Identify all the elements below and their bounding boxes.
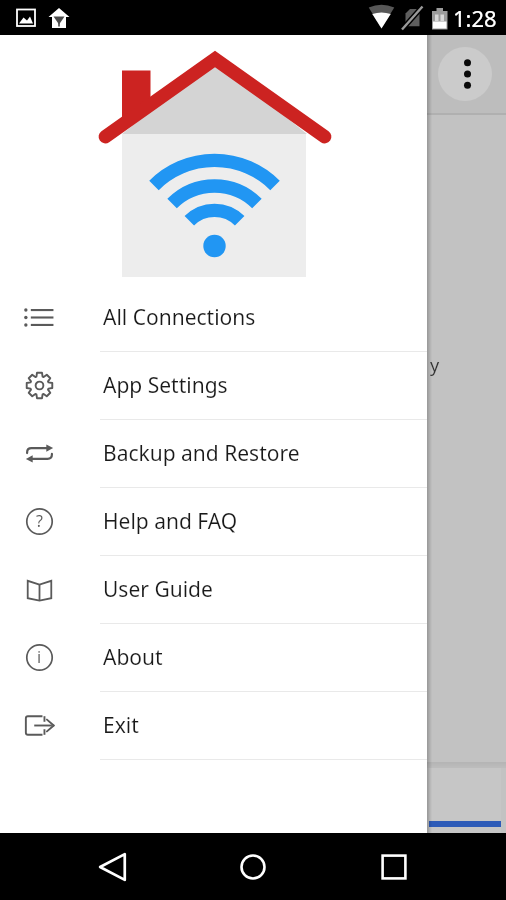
staticText: User Guide [103,575,213,604]
staticText: i [37,646,42,668]
staticText: 1:28 [453,3,497,33]
staticText: App Settings [103,371,228,400]
button[interactable]: User Guide [0,556,427,623]
button[interactable]: All Connections [0,284,427,351]
staticText: Exit [103,711,139,740]
staticText: About [103,643,163,672]
button[interactable]: App Settings [0,352,427,419]
button[interactable]: ? [0,488,427,555]
staticText: All Connections [103,303,256,332]
button[interactable]: Backup and Restore [0,420,427,487]
button[interactable]: More options [438,47,492,101]
staticText: y [430,353,440,378]
staticText: Help and FAQ [103,507,238,536]
button[interactable]: Home [230,833,276,900]
button[interactable]: Exit [0,692,427,759]
button[interactable]: i [0,624,427,691]
staticText: ? [36,510,43,532]
button[interactable]: Recent apps [371,833,417,900]
staticText: Backup and Restore [103,439,300,468]
button[interactable]: Back [90,833,136,900]
